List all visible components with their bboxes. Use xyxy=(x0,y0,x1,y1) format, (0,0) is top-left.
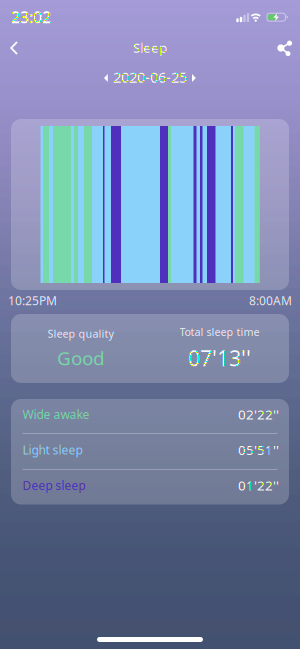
staticText: Total sleep time xyxy=(179,325,259,339)
staticText: Sleep quality xyxy=(47,326,113,341)
staticText: 01'22'' xyxy=(238,476,279,494)
staticText: 2020-06-25 xyxy=(113,67,187,87)
button[interactable]: Next day xyxy=(187,65,201,89)
button[interactable]: Share xyxy=(269,35,300,62)
staticText: Sleep xyxy=(133,39,167,56)
staticText: 07'13'' xyxy=(188,344,251,372)
staticText: 05'51'' xyxy=(238,441,279,459)
staticText: Light sleep xyxy=(22,442,82,458)
staticText: 02'22'' xyxy=(238,405,279,423)
button[interactable]: Back xyxy=(0,34,31,62)
staticText: Good xyxy=(57,346,104,370)
button[interactable]: Previous day xyxy=(99,65,113,89)
staticText: Wide awake xyxy=(22,406,89,422)
staticText: Deep sleep xyxy=(22,477,85,493)
staticText: 23:02 xyxy=(11,6,51,28)
staticText: 8:00AM xyxy=(249,292,292,308)
staticText: 10:25PM xyxy=(8,292,57,308)
